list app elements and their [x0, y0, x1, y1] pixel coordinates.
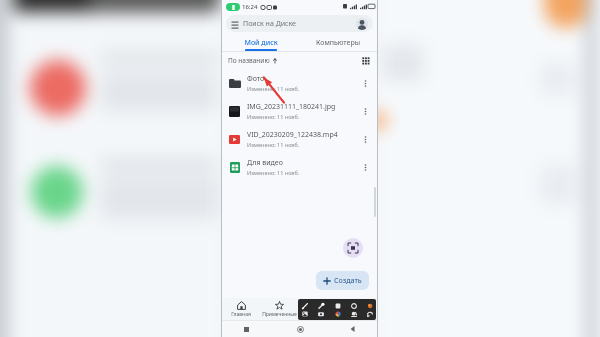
staticText: 16:24 — [242, 3, 258, 11]
staticText: Изменено: 11 нояб. — [247, 113, 300, 120]
button[interactable]: Camera — [316, 310, 325, 318]
staticText: IMG_20231111_180241.jpg — [247, 102, 336, 112]
staticText: Изменено: 11 нояб. — [247, 141, 300, 148]
staticText: Для видео — [247, 158, 283, 168]
staticText: Мой диск — [244, 38, 278, 48]
staticText: По названию — [228, 56, 270, 65]
button[interactable]: Примеченные — [260, 298, 299, 320]
button[interactable]: Scan document — [343, 238, 363, 258]
button[interactable]: Для видео — [222, 153, 377, 181]
button[interactable]: Grid view — [360, 55, 371, 66]
button[interactable]: Recents — [240, 323, 252, 335]
button[interactable]: Фото — [222, 69, 377, 97]
button[interactable]: Insert image — [300, 310, 309, 318]
button[interactable]: More options — [359, 161, 371, 173]
button[interactable]: More options — [359, 105, 371, 117]
button[interactable]: Создать — [316, 271, 369, 290]
staticText: Главная — [231, 311, 251, 318]
staticText: Примеченные — [262, 311, 297, 318]
staticText: Поиск на Диске — [243, 19, 296, 29]
button[interactable]: Fill — [349, 310, 358, 318]
button[interactable]: Главная — [222, 298, 260, 320]
other: Menu — [231, 20, 239, 28]
button[interactable]: Color picker — [333, 310, 342, 318]
button[interactable]: VID_20230209_122438.mp4 — [222, 125, 377, 153]
staticText: Фото — [247, 74, 265, 84]
staticText: Изменено: 11 нояб. — [247, 169, 300, 176]
button[interactable]: Компьютеры — [299, 34, 377, 51]
button[interactable]: Blur brush — [365, 301, 374, 310]
button[interactable]: Account — [356, 18, 368, 30]
button[interactable]: Back — [347, 323, 359, 335]
button[interactable]: More options — [359, 77, 371, 89]
staticText: VID_20230209_122438.mp4 — [247, 130, 338, 140]
button[interactable]: Rectangle — [333, 301, 342, 310]
button[interactable]: More options — [359, 133, 371, 145]
button[interactable]: IMG_20231111_180241.jpg — [222, 97, 377, 125]
button[interactable]: Highlighter — [316, 301, 325, 310]
staticText: Изменено: 11 нояб. — [247, 85, 300, 92]
staticText: Создать — [334, 276, 362, 286]
button[interactable]: По названию — [228, 56, 278, 65]
button[interactable]: Home — [294, 323, 306, 335]
button[interactable]: Мой диск — [222, 34, 299, 51]
button[interactable]: Pen — [300, 301, 309, 310]
button[interactable]: Menu — [226, 15, 373, 32]
staticText: Компьютеры — [316, 38, 360, 48]
button[interactable]: Undo — [365, 310, 374, 318]
button[interactable]: Ellipse — [349, 301, 358, 310]
